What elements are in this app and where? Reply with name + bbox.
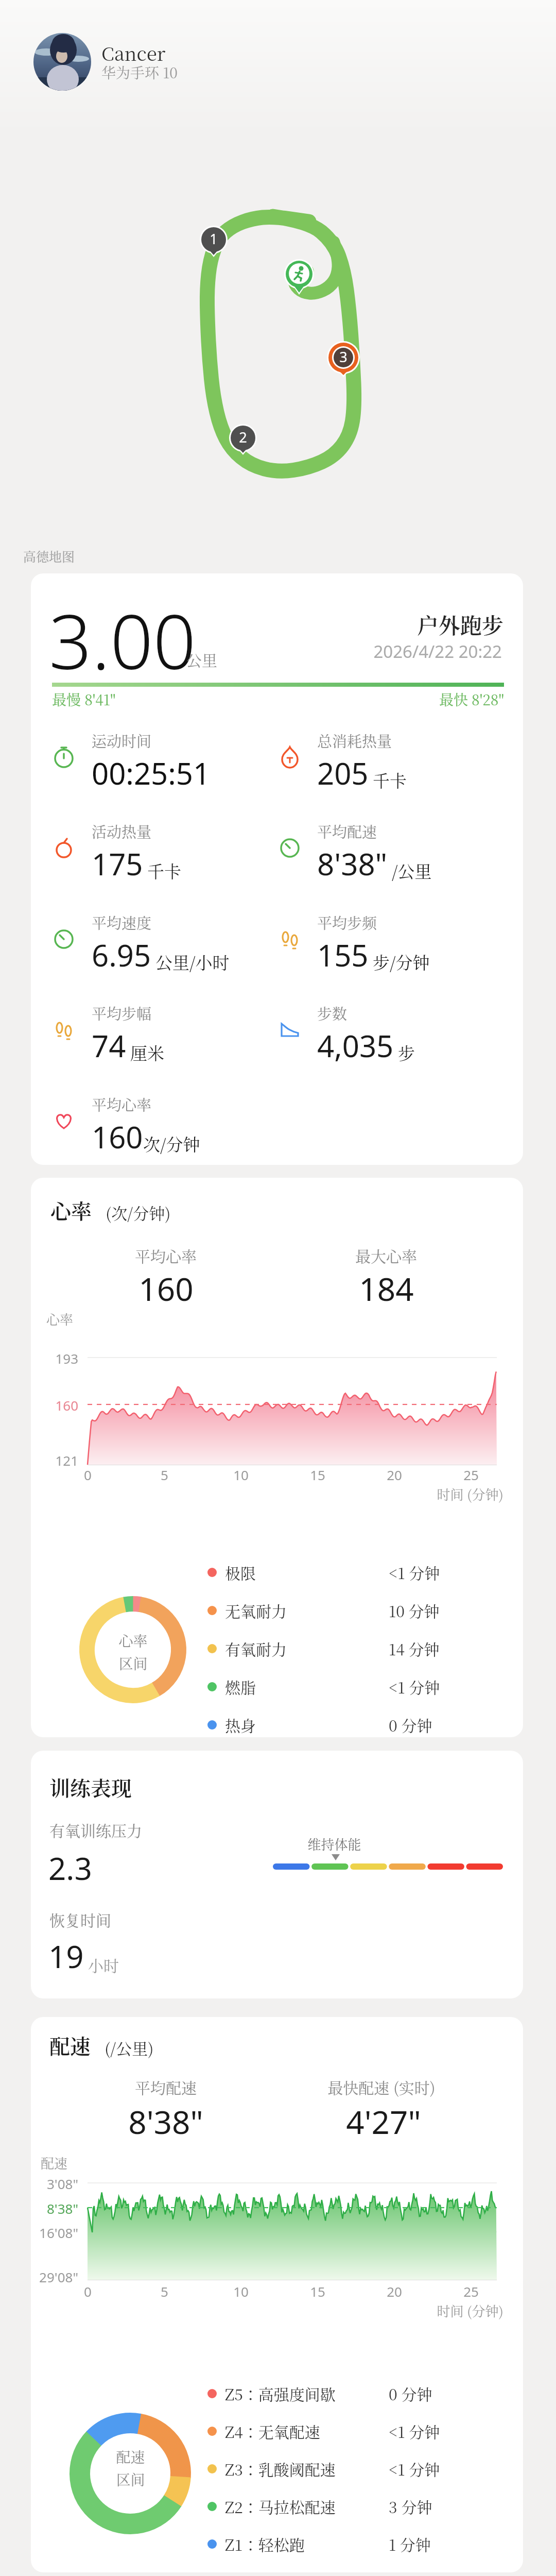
staticText: 16'08" — [39, 2224, 78, 2242]
staticText: 公里/小时 — [155, 950, 230, 974]
staticText: 心率 — [50, 1195, 92, 1225]
staticText: 74 — [92, 1025, 126, 1066]
staticText: 无氧耐力 — [225, 1599, 287, 1621]
staticText: 00:25:51 — [92, 753, 211, 793]
staticText: 训练表现 — [49, 1772, 132, 1802]
staticText: 25 — [463, 2282, 479, 2300]
staticText: 千卡 — [147, 858, 181, 883]
staticText: 小时 — [88, 1954, 119, 1976]
staticText: 10 分钟 — [389, 1599, 440, 1621]
button[interactable] — [31, 2017, 523, 2572]
staticText: Z3：乳酸阈配速 — [225, 2458, 336, 2480]
staticText: 热身 — [225, 1714, 256, 1736]
staticText: 15 — [310, 2282, 325, 2300]
staticText: 最慢 8'41" — [52, 689, 116, 709]
staticText: 8'38" — [46, 2199, 78, 2217]
staticText: 15 — [310, 1466, 325, 1484]
staticText: 193 — [55, 1349, 78, 1367]
staticText: 184 — [359, 1267, 414, 1310]
staticText: 活动热量 — [92, 821, 152, 842]
staticText: 配速 — [116, 2446, 145, 2467]
staticText: 25 — [463, 1466, 479, 1484]
staticText: 高德地图 — [23, 547, 75, 565]
staticText: 心率 — [46, 1309, 74, 1328]
staticText: 平均心率 — [135, 1244, 197, 1266]
staticText: Cancer — [101, 40, 166, 66]
staticText: 有氧训练压力 — [49, 1819, 142, 1841]
button[interactable] — [31, 1178, 523, 1737]
staticText: 3'08" — [46, 2175, 78, 2193]
staticText: <1 分钟 — [389, 2420, 440, 2442]
staticText: 恢复时间 — [49, 1908, 111, 1930]
staticText: 平均心率 — [92, 1094, 152, 1115]
staticText: <1 分钟 — [389, 2458, 440, 2480]
staticText: 平均配速 — [135, 2076, 197, 2098]
staticText: 3 — [339, 347, 347, 366]
staticText: 10 — [233, 1466, 249, 1484]
staticText: 4'27" — [346, 2100, 421, 2143]
staticText: 平均步幅 — [92, 1003, 152, 1024]
staticText: 维持体能 — [307, 1834, 361, 1853]
staticText: 区间 — [118, 1653, 148, 1673]
staticText: /公里 — [392, 858, 432, 883]
staticText: 平均速度 — [92, 912, 152, 934]
staticText: 0 — [84, 2282, 92, 2300]
staticText: 10 — [233, 2282, 249, 2300]
staticText: 2.3 — [48, 1847, 92, 1889]
staticText: 5 — [161, 1466, 168, 1484]
staticText: 29'08" — [39, 2268, 78, 2286]
button[interactable] — [31, 573, 523, 1165]
staticText: 8'38" — [128, 2100, 203, 2143]
staticText: 6.95 — [92, 935, 151, 975]
staticText: Z4：无氧配速 — [225, 2420, 320, 2442]
staticText: 步 — [398, 1040, 415, 1064]
staticText: 3.00 — [49, 589, 196, 691]
staticText: 平均配速 — [317, 821, 377, 842]
staticText: 19 — [48, 1935, 84, 1977]
staticText: 175 — [92, 843, 143, 884]
staticText: <1 分钟 — [389, 1561, 440, 1583]
staticText: 配速 — [41, 2153, 68, 2172]
staticText: (/公里) — [105, 2036, 154, 2059]
staticText: Z2：马拉松配速 — [225, 2495, 336, 2517]
staticText: 205 — [317, 753, 369, 793]
staticText: (次/分钟) — [106, 1201, 171, 1224]
staticText: 户外跑步 — [416, 609, 503, 640]
staticText: <1 分钟 — [389, 1675, 440, 1698]
staticText: 时间 (分钟) — [437, 2301, 503, 2320]
staticText: 步数 — [317, 1003, 347, 1024]
staticText: 最快 8'28" — [439, 689, 504, 709]
staticText: 1 — [210, 229, 218, 248]
staticText: 155 — [317, 935, 369, 975]
staticText: 公里 — [186, 648, 217, 670]
staticText: 121 — [55, 1451, 78, 1469]
staticText: 160 — [92, 1116, 143, 1157]
staticText: 平均步频 — [317, 912, 377, 934]
staticText: 次/分钟 — [143, 1131, 200, 1156]
staticText: 运动时间 — [92, 730, 152, 752]
staticText: 心率 — [118, 1630, 148, 1651]
staticText: 0 — [84, 1466, 92, 1484]
staticText: Z5：高强度间歇 — [225, 2382, 336, 2404]
staticText: 最大心率 — [355, 1244, 417, 1266]
staticText: 千卡 — [373, 768, 407, 792]
staticText: 160 — [138, 1267, 194, 1310]
staticText: 时间 (分钟) — [437, 1484, 503, 1503]
staticText: 160 — [55, 1396, 78, 1414]
staticText: 极限 — [225, 1561, 256, 1583]
staticText: 华为手环 10 — [101, 62, 178, 82]
button[interactable] — [31, 1751, 523, 1998]
staticText: 有氧耐力 — [225, 1637, 287, 1659]
staticText: 5 — [161, 2282, 168, 2300]
button[interactable] — [33, 33, 91, 91]
staticText: 0 分钟 — [389, 1714, 432, 1736]
staticText: 厘米 — [130, 1040, 164, 1064]
staticText: 步/分钟 — [373, 950, 430, 974]
staticText: 8'38" — [317, 843, 388, 884]
staticText: 3 分钟 — [389, 2495, 432, 2517]
staticText: 总消耗热量 — [317, 730, 392, 752]
staticText: 14 分钟 — [389, 1637, 440, 1659]
staticText: 燃脂 — [225, 1675, 256, 1698]
staticText: 最快配速 (实时) — [327, 2076, 436, 2098]
staticText: 4,035 — [317, 1025, 394, 1066]
